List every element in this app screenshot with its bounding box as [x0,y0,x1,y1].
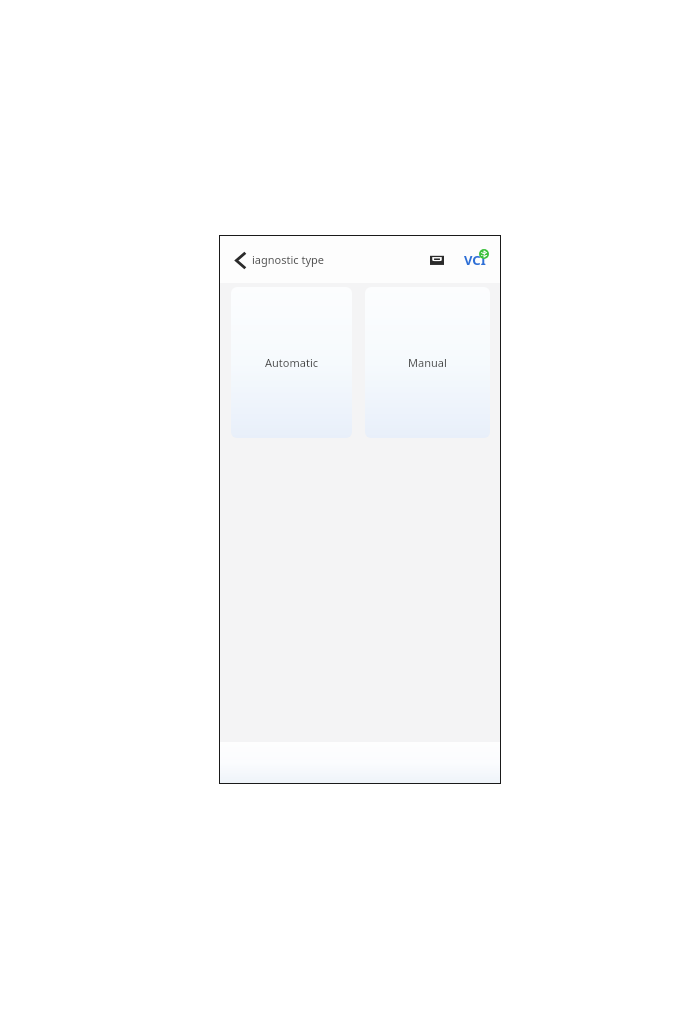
staticText: VCI [464,251,486,269]
button[interactable]: Back [225,245,255,275]
button[interactable]: Manual [365,287,490,438]
button[interactable]: Messages [424,247,450,273]
button[interactable]: VCI connection [459,247,491,273]
button[interactable]: Automatic [231,287,352,438]
staticText: Manual [408,355,447,370]
staticText: iagnostic type [252,252,324,267]
staticText: Automatic [265,355,318,370]
